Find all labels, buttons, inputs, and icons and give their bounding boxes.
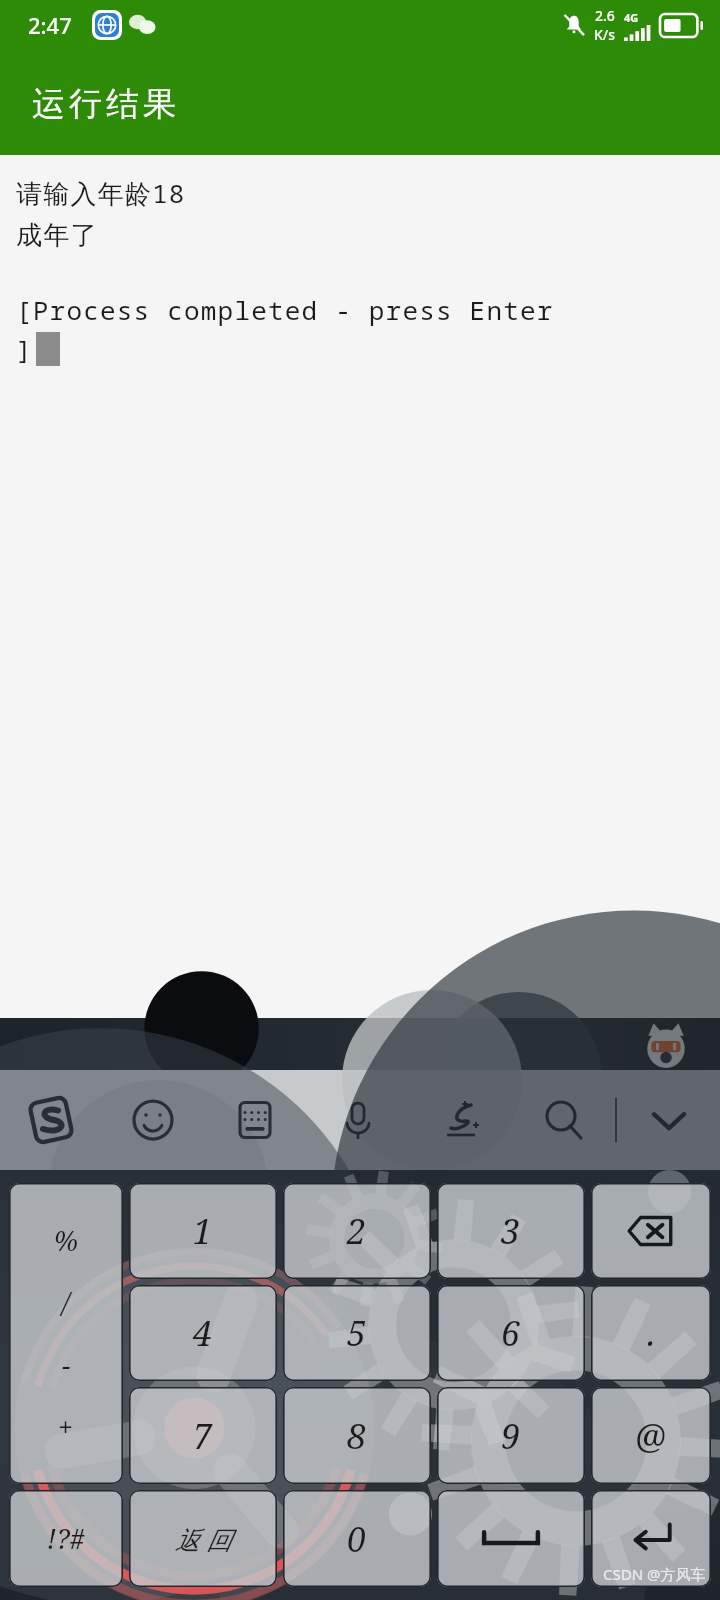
button[interactable]: Symbols column: [9, 1183, 123, 1484]
staticText: @: [635, 1413, 667, 1459]
button[interactable]: 4: [129, 1285, 277, 1381]
staticText: 7: [193, 1413, 213, 1459]
button[interactable]: 5: [283, 1285, 431, 1381]
staticText: 成年了: [16, 219, 98, 252]
staticText: [Process completed - press Enter: [16, 292, 554, 327]
button[interactable]: 1: [129, 1183, 277, 1279]
staticText: 5: [347, 1310, 367, 1356]
staticText: .: [647, 1310, 656, 1356]
button[interactable]: Emoji: [102, 1070, 204, 1170]
staticText: CSDN @方风车: [603, 1564, 706, 1584]
button[interactable]: Sogou input: [0, 1070, 102, 1170]
staticText: 1: [193, 1208, 213, 1254]
staticText: 9: [501, 1413, 521, 1459]
staticText: 运行结果: [30, 83, 178, 125]
button[interactable]: Voice input: [306, 1070, 409, 1170]
button[interactable]: Search: [512, 1070, 615, 1170]
staticText: 2.6: [595, 6, 615, 25]
button[interactable]: Hide keyboard: [617, 1070, 720, 1170]
staticText: 2: [347, 1208, 367, 1254]
staticText: -: [62, 1346, 71, 1383]
button[interactable]: Symbols: [9, 1490, 123, 1587]
staticText: 0: [347, 1516, 367, 1562]
button[interactable]: 0: [283, 1490, 431, 1587]
staticText: %: [54, 1222, 79, 1259]
button[interactable]: Keyboard layout: [204, 1070, 306, 1170]
staticText: 2:47: [28, 10, 72, 40]
button[interactable]: 9: [437, 1387, 585, 1484]
staticText: 4G: [624, 10, 639, 25]
staticText: 返 回: [175, 1522, 232, 1556]
button[interactable]: Period: [591, 1285, 711, 1381]
staticText: 请输入年龄18: [16, 175, 186, 211]
button[interactable]: 8: [283, 1387, 431, 1484]
button[interactable]: Space: [437, 1490, 585, 1587]
button[interactable]: 3: [437, 1183, 585, 1279]
button[interactable]: Enter: [591, 1490, 711, 1587]
button[interactable]: 2: [283, 1183, 431, 1279]
staticText: 4: [193, 1310, 213, 1356]
staticText: ]: [16, 331, 33, 366]
staticText: 8: [347, 1413, 367, 1459]
staticText: 6: [501, 1310, 521, 1356]
button[interactable]: Handwriting: [409, 1070, 512, 1170]
button[interactable]: At sign: [591, 1387, 711, 1484]
staticText: K/s: [594, 25, 616, 44]
staticText: !?#: [47, 1520, 85, 1557]
button[interactable]: 6: [437, 1285, 585, 1381]
staticText: 3: [501, 1208, 521, 1254]
button[interactable]: 返回: [129, 1490, 277, 1587]
button[interactable]: Assistant: [640, 1018, 692, 1070]
button[interactable]: Backspace: [591, 1183, 711, 1279]
staticText: +: [58, 1408, 74, 1445]
staticText: /: [62, 1284, 70, 1321]
button[interactable]: 7: [129, 1387, 277, 1484]
